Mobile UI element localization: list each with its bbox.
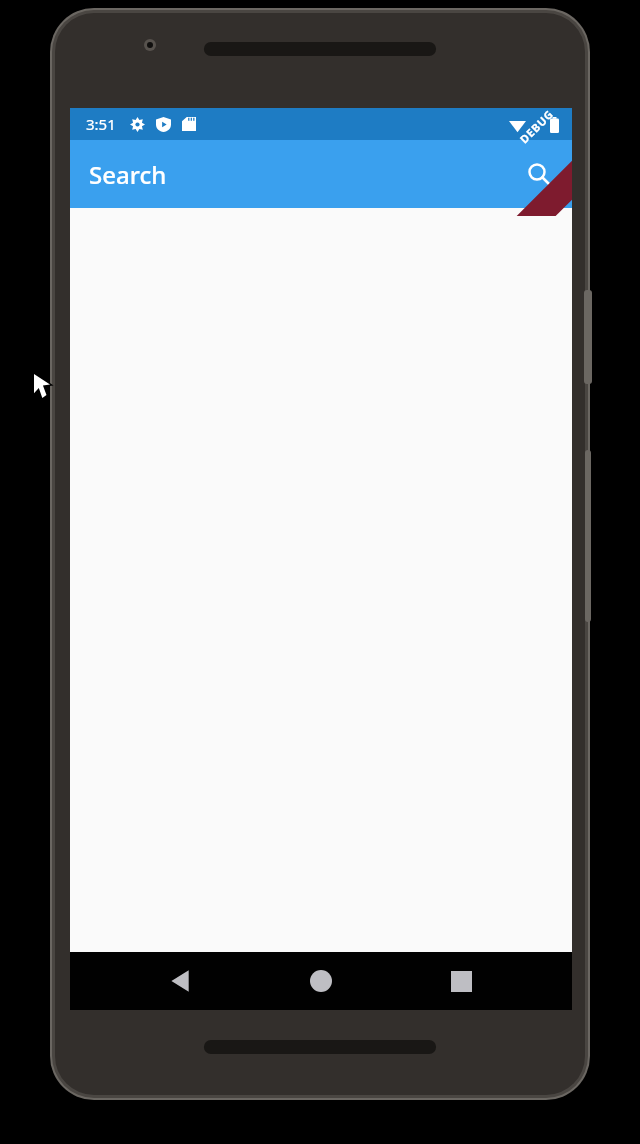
staticText: DEBUG (516, 106, 556, 146)
staticText: 3:51 (86, 114, 116, 134)
staticText: Search (89, 158, 167, 191)
button[interactable]: Search (515, 150, 563, 198)
button[interactable]: Home (289, 952, 353, 1010)
button[interactable]: Recent apps (429, 952, 493, 1010)
button[interactable]: Back (149, 952, 213, 1010)
